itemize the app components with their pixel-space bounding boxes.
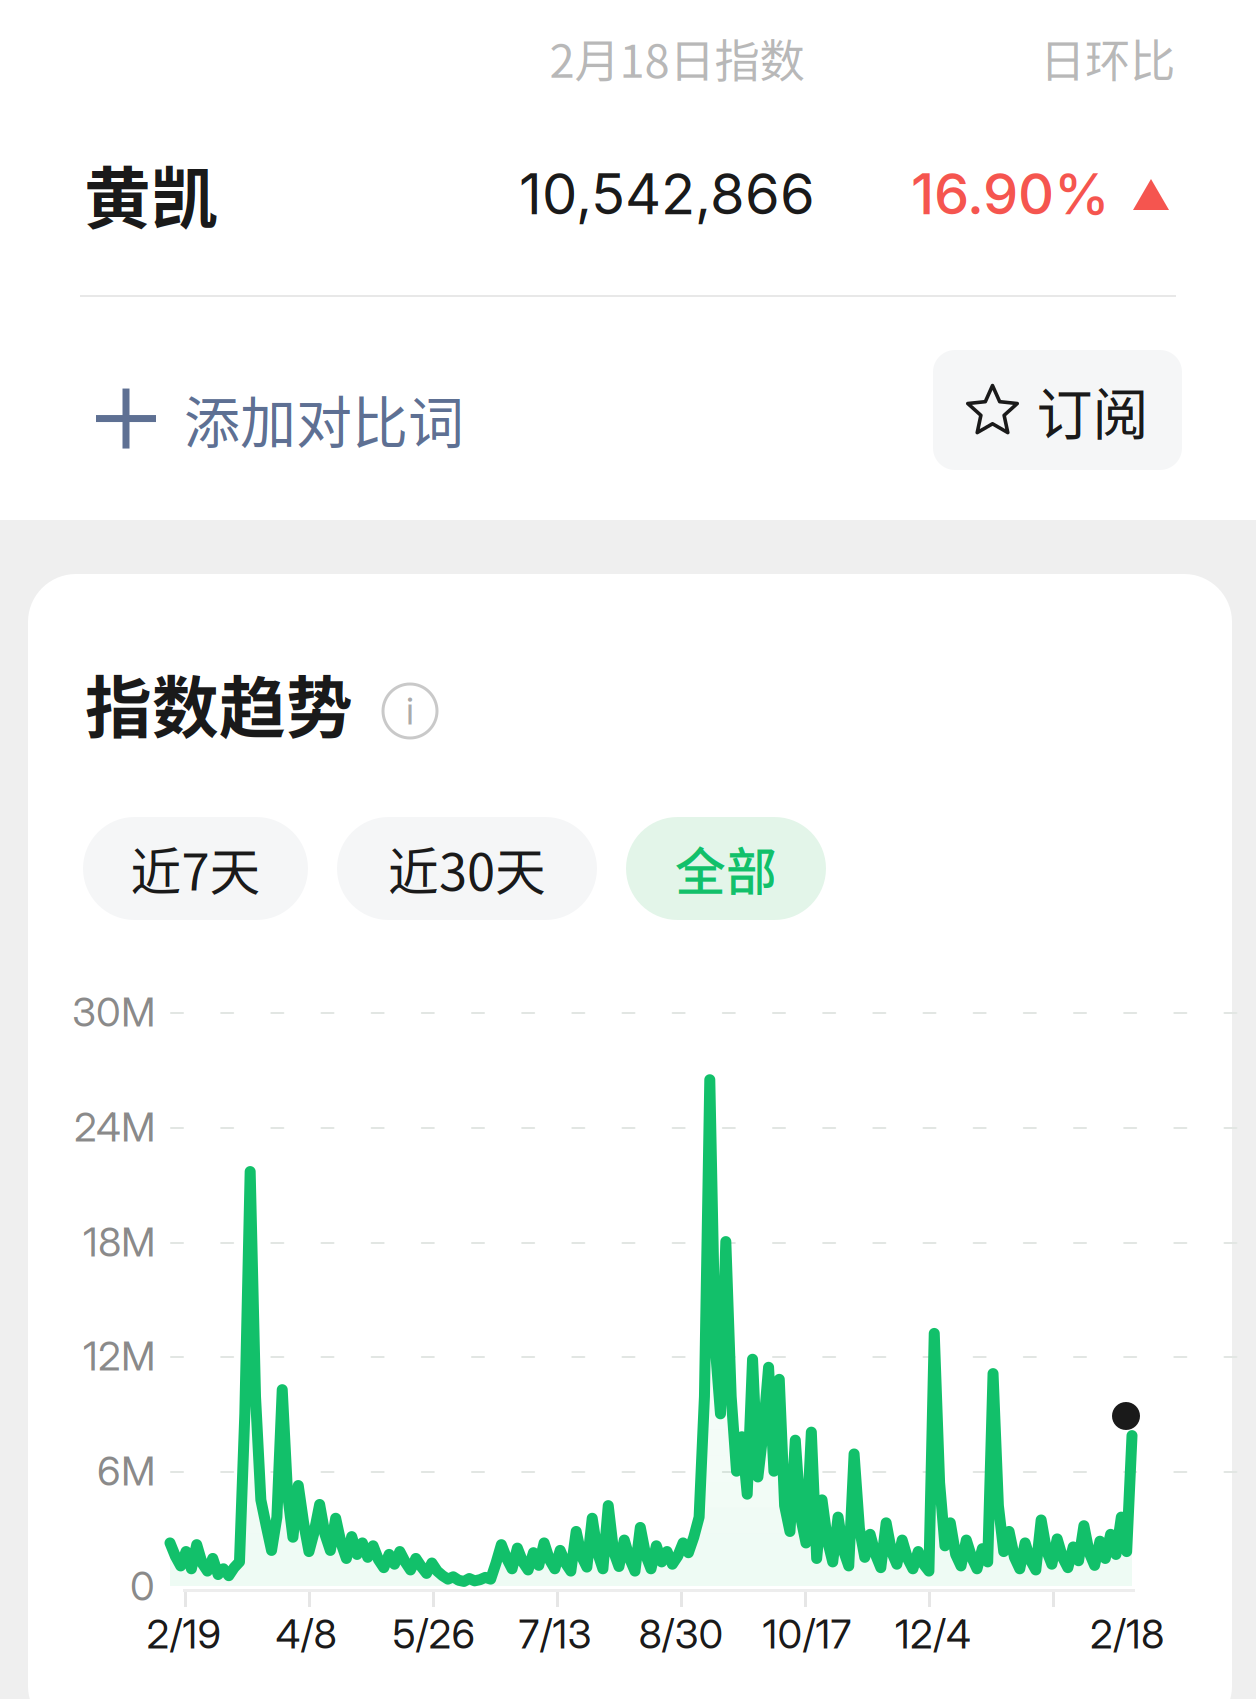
- button[interactable]: 全部: [626, 817, 826, 920]
- staticText: 6M: [97, 1447, 155, 1495]
- button[interactable]: 近30天: [337, 817, 597, 920]
- staticText: 近30天: [388, 832, 546, 905]
- staticText: 添加对比词: [184, 378, 464, 459]
- staticText: 7/13: [518, 1610, 591, 1658]
- staticText: 订阅: [1036, 369, 1148, 451]
- staticText: 2月18日指数: [549, 25, 804, 91]
- staticText: 指数趋势: [85, 655, 353, 751]
- button[interactable]: 订阅: [933, 350, 1182, 470]
- staticText: 黄凯: [84, 146, 218, 242]
- staticText: 10,542,866: [519, 160, 815, 228]
- staticText: 2/19: [146, 1610, 221, 1658]
- staticText: 24M: [74, 1103, 155, 1151]
- staticText: i: [406, 688, 414, 734]
- staticText: 12/4: [895, 1610, 971, 1658]
- staticText: 2/18: [1090, 1610, 1164, 1658]
- button[interactable]: 添加对比词: [0, 348, 560, 489]
- button[interactable]: 近7天: [83, 817, 308, 920]
- staticText: 16.90%: [911, 160, 1110, 228]
- staticText: 日环比: [1040, 25, 1175, 91]
- staticText: 12M: [83, 1332, 155, 1380]
- staticText: 近7天: [130, 832, 260, 905]
- staticText: 8/30: [638, 1610, 723, 1658]
- staticText: 10/17: [762, 1610, 851, 1658]
- staticText: 0: [130, 1562, 155, 1610]
- staticText: 30M: [72, 988, 155, 1036]
- staticText: 5/26: [392, 1610, 475, 1658]
- staticText: 4/8: [275, 1610, 336, 1658]
- staticText: 全部: [675, 832, 777, 905]
- staticText: 18M: [83, 1218, 155, 1266]
